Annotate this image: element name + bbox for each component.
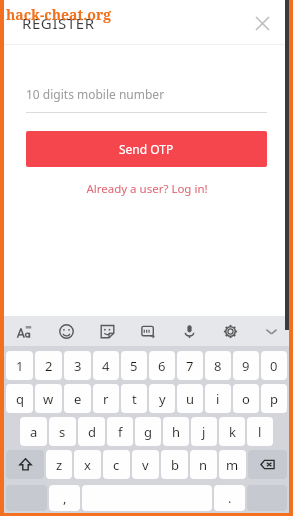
staticText: f: [118, 423, 123, 441]
button[interactable]: 10 digits mobile number: [26, 81, 267, 107]
button[interactable]: x: [74, 450, 101, 479]
staticText: e: [74, 390, 82, 408]
button[interactable]: 9: [233, 351, 259, 380]
staticText: o: [242, 390, 250, 408]
staticText: z: [56, 456, 63, 474]
button[interactable]: Already a user? Log in!: [26, 179, 267, 199]
button[interactable]: k: [219, 417, 245, 446]
button[interactable]: h: [163, 417, 189, 446]
staticText: 3: [74, 357, 82, 375]
staticText: t: [132, 390, 137, 408]
button[interactable]: .: [214, 485, 245, 511]
button[interactable]: t: [121, 384, 147, 413]
button[interactable]: ,: [49, 485, 80, 511]
button[interactable]: o: [233, 384, 259, 413]
staticText: g: [144, 423, 152, 441]
staticText: y: [159, 390, 166, 408]
staticText: 5: [130, 357, 138, 375]
button[interactable]: d: [78, 417, 105, 446]
button[interactable]: Settings: [218, 319, 242, 343]
staticText: hack-cheat.org: [6, 5, 112, 24]
staticText: 0: [270, 357, 278, 375]
button[interactable]: q: [6, 384, 33, 413]
staticText: w: [43, 390, 54, 408]
staticText: q: [16, 390, 24, 408]
button[interactable]: m: [219, 450, 246, 479]
staticText: 9: [242, 357, 250, 375]
staticText: 10 digits mobile number: [26, 86, 165, 102]
staticText: b: [171, 456, 179, 474]
button[interactable]: 0: [261, 351, 287, 380]
button[interactable]: 4: [93, 351, 119, 380]
button[interactable]: b: [161, 450, 188, 479]
button[interactable]: y: [149, 384, 175, 413]
button[interactable]: p: [261, 384, 287, 413]
button[interactable]: 7: [177, 351, 203, 380]
staticText: d: [88, 423, 96, 441]
button[interactable]: l: [247, 417, 273, 446]
staticText: m: [226, 456, 239, 474]
button[interactable]: u: [177, 384, 203, 413]
staticText: r: [103, 390, 109, 408]
button[interactable]: s: [49, 417, 76, 446]
button[interactable]: c: [103, 450, 130, 479]
button[interactable]: Close: [249, 10, 275, 36]
staticText: 8: [214, 357, 222, 375]
staticText: REGISTER: [22, 13, 95, 33]
button[interactable]: z: [46, 450, 72, 479]
button[interactable]: Hide keyboard: [259, 319, 283, 343]
button[interactable]: Shift: [6, 450, 44, 479]
staticText: h: [172, 423, 181, 441]
button[interactable]: g: [135, 417, 161, 446]
staticText: .: [228, 489, 232, 507]
staticText: Already a user? Log in!: [86, 181, 208, 197]
staticText: 4: [102, 357, 110, 375]
button[interactable]: 8: [205, 351, 231, 380]
button[interactable]: 6: [149, 351, 175, 380]
button[interactable]: GIF: [136, 319, 160, 343]
staticText: p: [270, 390, 278, 408]
staticText: k: [229, 423, 236, 441]
staticText: x: [84, 456, 91, 474]
button[interactable]: 5: [121, 351, 147, 380]
staticText: u: [186, 390, 195, 408]
button[interactable]: Text style: [12, 319, 36, 343]
staticText: c: [113, 456, 120, 474]
staticText: j: [202, 423, 206, 441]
button[interactable]: Stickers: [95, 319, 119, 343]
button[interactable]: a: [20, 417, 47, 446]
staticText: 7: [186, 357, 194, 375]
button[interactable]: Emoji: [54, 319, 78, 343]
button[interactable]: 1: [6, 351, 33, 380]
button[interactable]: 2: [35, 351, 62, 380]
staticText: s: [59, 423, 66, 441]
button[interactable]: w: [35, 384, 62, 413]
button[interactable]: n: [190, 450, 217, 479]
staticText: Send OTP: [119, 141, 174, 157]
button[interactable]: j: [191, 417, 217, 446]
staticText: 2: [45, 357, 53, 375]
staticText: n: [199, 456, 208, 474]
staticText: 1: [16, 357, 24, 375]
staticText: ,: [63, 489, 67, 507]
button[interactable]: r: [93, 384, 119, 413]
button[interactable]: e: [64, 384, 91, 413]
staticText: i: [216, 390, 220, 408]
button[interactable]: 3: [64, 351, 91, 380]
button[interactable]: v: [132, 450, 159, 479]
button[interactable]: i: [205, 384, 231, 413]
staticText: a: [30, 423, 38, 441]
button[interactable]: Backspace: [248, 450, 287, 479]
staticText: 6: [158, 357, 166, 375]
button[interactable]: Voice input: [177, 319, 201, 343]
button[interactable]: Send OTP: [26, 131, 267, 167]
staticText: v: [142, 456, 149, 474]
staticText: l: [258, 423, 262, 441]
button[interactable]: f: [107, 417, 133, 446]
